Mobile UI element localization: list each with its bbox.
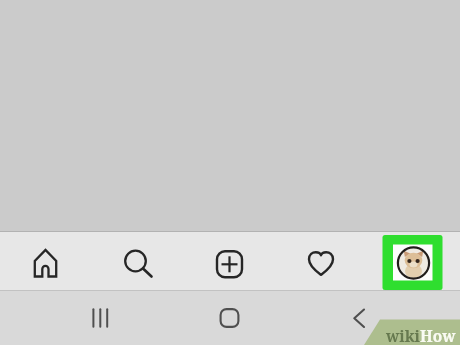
staticText: wikiHow xyxy=(386,325,456,345)
button[interactable] xyxy=(78,296,122,340)
button[interactable] xyxy=(207,296,251,340)
button[interactable] xyxy=(92,232,184,290)
button[interactable] xyxy=(368,232,460,290)
button[interactable] xyxy=(276,232,368,290)
button[interactable] xyxy=(337,296,381,340)
button[interactable] xyxy=(0,232,92,290)
button[interactable] xyxy=(184,232,276,290)
